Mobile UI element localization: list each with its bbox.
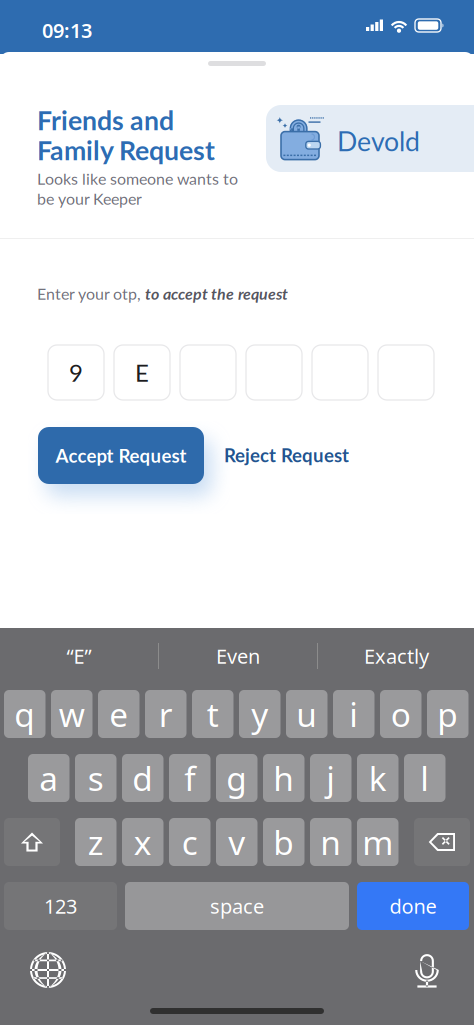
button[interactable]: “E” xyxy=(0,632,158,680)
button[interactable]: t xyxy=(192,690,233,738)
staticText: y xyxy=(251,692,268,736)
button[interactable]: Dictate xyxy=(411,951,443,991)
button[interactable] xyxy=(312,345,368,400)
staticText: 9 xyxy=(69,358,83,387)
button[interactable]: r xyxy=(145,690,186,738)
staticText: Exactly xyxy=(364,643,429,669)
staticText: done xyxy=(389,893,436,919)
button[interactable]: z xyxy=(75,818,116,866)
button[interactable]: Accept Request xyxy=(38,427,204,484)
button[interactable]: Reject Request xyxy=(224,442,354,468)
staticText: p xyxy=(437,692,458,736)
staticText: b xyxy=(273,820,294,864)
staticText: space xyxy=(210,893,264,919)
staticText: d xyxy=(132,756,153,800)
staticText: E xyxy=(135,358,149,387)
staticText: f xyxy=(184,756,195,800)
button[interactable]: done xyxy=(357,882,469,930)
button[interactable]: b xyxy=(263,818,304,866)
staticText: u xyxy=(296,692,317,736)
staticText: 09:13 xyxy=(42,17,92,44)
staticText: g xyxy=(226,756,247,800)
staticText: r xyxy=(159,692,173,736)
button[interactable]: 123 xyxy=(4,882,117,930)
button[interactable]: o xyxy=(380,690,421,738)
button[interactable]: E xyxy=(114,345,170,400)
button[interactable]: Delete xyxy=(414,818,470,866)
button[interactable]: g xyxy=(216,754,257,802)
button[interactable]: s xyxy=(75,754,116,802)
staticText: o xyxy=(391,692,411,736)
staticText: a xyxy=(39,756,58,800)
staticText: v xyxy=(228,820,245,864)
staticText: 123 xyxy=(44,893,77,919)
staticText: x xyxy=(134,820,152,864)
button[interactable]: n xyxy=(310,818,351,866)
staticText: be your Keeper xyxy=(37,189,142,208)
staticText: s xyxy=(88,756,104,800)
button[interactable] xyxy=(180,345,236,400)
staticText: n xyxy=(320,820,341,864)
button[interactable]: h xyxy=(263,754,304,802)
button[interactable]: 9 xyxy=(48,345,104,400)
button[interactable]: k xyxy=(357,754,398,802)
staticText: c xyxy=(182,820,198,864)
button[interactable]: f xyxy=(169,754,210,802)
staticText: i xyxy=(349,692,358,736)
staticText: w xyxy=(59,692,85,736)
staticText: z xyxy=(88,820,104,864)
staticText: Even xyxy=(216,643,260,669)
staticText: t xyxy=(207,692,219,736)
staticText: Friends and xyxy=(37,104,174,136)
button[interactable]: u xyxy=(286,690,327,738)
staticText: q xyxy=(14,692,35,736)
button[interactable]: e xyxy=(98,690,139,738)
button[interactable] xyxy=(246,345,302,400)
button[interactable]: p xyxy=(427,690,468,738)
button[interactable]: c xyxy=(169,818,210,866)
button[interactable]: l xyxy=(404,754,445,802)
button[interactable]: i xyxy=(333,690,374,738)
button[interactable]: x xyxy=(122,818,163,866)
button[interactable]: m xyxy=(357,818,398,866)
staticText: Accept Request xyxy=(55,444,186,467)
button[interactable]: Exactly xyxy=(318,632,474,680)
button[interactable]: v xyxy=(216,818,257,866)
staticText: “E” xyxy=(66,643,91,669)
button[interactable]: q xyxy=(4,690,45,738)
button[interactable]: space xyxy=(125,882,349,930)
button[interactable]: a xyxy=(28,754,69,802)
staticText: to accept the request xyxy=(145,284,288,303)
button[interactable]: Switch keyboard xyxy=(29,951,67,989)
button[interactable]: d xyxy=(122,754,163,802)
staticText: k xyxy=(369,756,387,800)
staticText: Enter your otp, xyxy=(37,284,145,303)
staticText: Family Request xyxy=(37,134,215,166)
staticText: m xyxy=(362,820,393,864)
button[interactable]: Shift xyxy=(4,818,60,866)
staticText: l xyxy=(420,756,429,800)
staticText: e xyxy=(109,692,128,736)
staticText: Devold xyxy=(337,125,420,157)
button[interactable] xyxy=(378,345,434,400)
button[interactable]: y xyxy=(239,690,280,738)
button[interactable]: w xyxy=(51,690,92,738)
button[interactable]: j xyxy=(310,754,351,802)
staticText: h xyxy=(273,756,294,800)
button[interactable]: Even xyxy=(159,632,317,680)
staticText: Reject Request xyxy=(224,444,349,466)
staticText: Looks like someone wants to xyxy=(37,169,238,188)
staticText: j xyxy=(326,756,335,800)
